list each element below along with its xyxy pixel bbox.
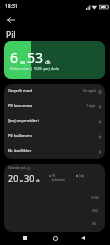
staticText: %100	[91, 196, 99, 200]
staticText: 53	[27, 48, 44, 67]
staticText: Pil kullanımı	[52, 174, 65, 182]
staticText: dk	[44, 59, 51, 65]
button[interactable]: Pil kullanımı	[4, 129, 105, 144]
staticText: Ekranda açık	[8, 166, 26, 170]
staticText: 18:31	[5, 3, 18, 10]
staticText: 30	[24, 172, 35, 184]
button[interactable]: Back	[4, 13, 18, 27]
staticText: 1 öge	[86, 103, 96, 108]
staticText: Pil koruması	[8, 103, 33, 109]
staticText: Şarj	[79, 174, 85, 178]
staticText: %50	[92, 209, 98, 213]
button[interactable]: Şarj seçenekleri	[4, 114, 105, 129]
button[interactable]: Ekranda açık	[4, 164, 105, 232]
staticText: dk	[35, 179, 40, 183]
staticText: 6	[10, 48, 19, 67]
staticText: %0	[92, 222, 97, 226]
button[interactable]: 6	[4, 41, 105, 79]
button[interactable]: Home	[49, 232, 61, 244]
button[interactable]: Geçerli mod	[4, 84, 105, 99]
staticText: Kalan süre | %25 şarj dolu	[10, 66, 60, 71]
staticText: Şarj seçenekleri	[8, 118, 39, 124]
button[interactable]: Pil koruması	[4, 99, 105, 114]
button[interactable]: Back	[77, 232, 89, 244]
staticText: Geçerli mod	[8, 88, 32, 94]
staticText: Pil	[6, 29, 16, 41]
staticText: 20	[8, 172, 19, 184]
staticText: Pil kullanımı	[8, 133, 32, 139]
staticText: sa	[19, 59, 27, 65]
button[interactable]: Recents	[19, 232, 31, 244]
staticText: sa	[19, 179, 24, 183]
button[interactable]: Ek özellikler	[4, 144, 105, 159]
staticText: Dengeli	[83, 88, 96, 93]
staticText: Ek özellikler	[8, 148, 32, 154]
